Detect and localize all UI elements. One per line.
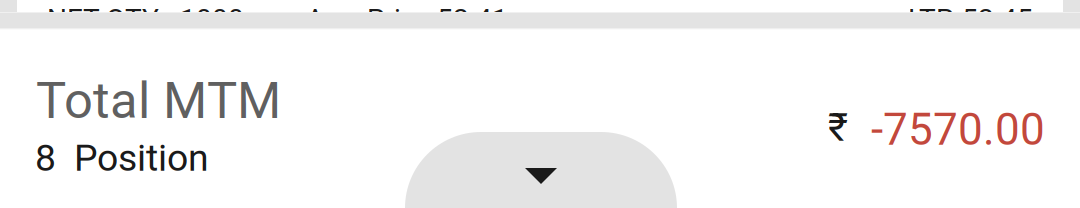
staticText: -7570.00 — [871, 104, 1045, 156]
staticText: 52.41 — [437, 3, 508, 36]
staticText: Avg. Price — [306, 3, 431, 36]
staticText: NET QTY : 1000 — [47, 3, 244, 36]
staticText: 8 Position — [35, 136, 209, 180]
staticText: Total MTM — [36, 71, 281, 130]
button[interactable]: Expand positions — [405, 132, 677, 208]
staticText: ₹ — [828, 105, 848, 150]
staticText: 52.45 — [962, 3, 1033, 36]
staticText: LTP — [908, 3, 954, 36]
